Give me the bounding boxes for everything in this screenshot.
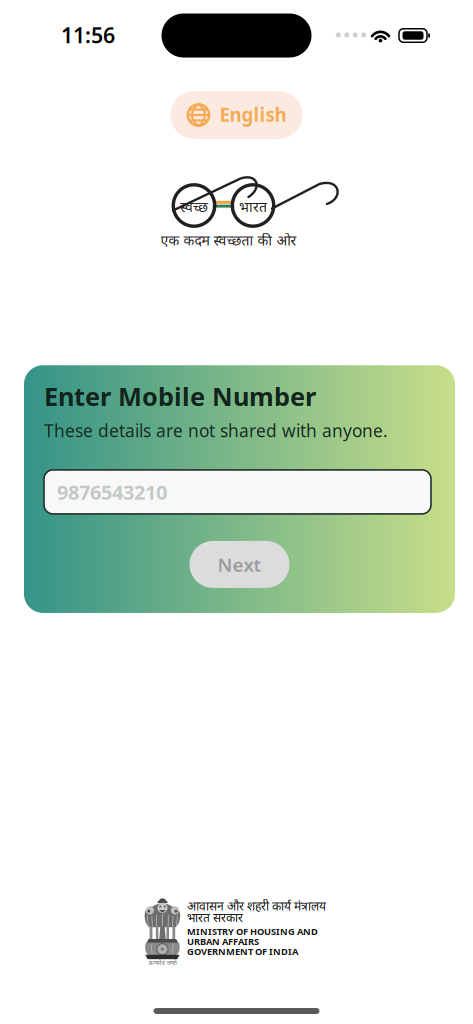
staticText: English: [219, 102, 286, 127]
staticText: भारत: [239, 199, 267, 218]
staticText: URBAN AFFAIRS: [187, 935, 259, 948]
staticText: GOVERNMENT OF INDIA: [187, 945, 298, 958]
staticText: आवासन और शहरी कार्य मंत्रालय: [187, 900, 326, 915]
staticText: Enter Mobile Number: [44, 379, 316, 413]
staticText: सत्यमेव जयते: [148, 960, 176, 967]
staticText: MINISTRY OF HOUSING AND: [187, 925, 318, 938]
staticText: 9876543210: [57, 479, 167, 505]
staticText: 11:56: [61, 21, 115, 49]
staticText: एक कदम स्वच्छता की ओर: [160, 233, 296, 251]
button[interactable]: Next: [189, 541, 289, 588]
staticText: स्वच्छ: [180, 199, 208, 218]
button[interactable]: English: [170, 91, 302, 139]
staticText: भारत सरकार: [187, 911, 243, 927]
staticText: These details are not shared with anyone…: [44, 419, 388, 442]
staticText: Next: [217, 552, 261, 577]
